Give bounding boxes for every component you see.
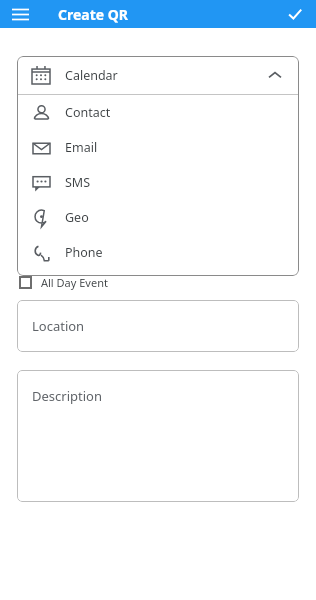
button[interactable]: Contact: [17, 95, 299, 130]
staticText: Description: [32, 387, 102, 405]
staticText: All Day Event: [41, 275, 108, 290]
button[interactable]: Geo: [17, 200, 299, 235]
button[interactable]: Open navigation menu: [4, 0, 36, 28]
button[interactable]: SMS: [17, 165, 299, 200]
button[interactable]: Phone: [17, 235, 299, 270]
button[interactable]: Save QR code: [279, 0, 311, 28]
staticText: Phone: [65, 244, 103, 261]
button[interactable]: Email: [17, 130, 299, 165]
staticText: Geo: [65, 209, 89, 226]
staticText: Contact: [65, 104, 111, 121]
staticText: SMS: [65, 174, 91, 191]
staticText: Calendar: [65, 67, 118, 84]
button[interactable]: Description: [17, 370, 299, 502]
button[interactable]: Location: [17, 300, 299, 352]
button[interactable]: Calendar: [17, 56, 299, 94]
staticText: Create QR: [58, 5, 129, 24]
staticText: Email: [65, 139, 98, 156]
button[interactable]: All Day Event: [19, 272, 316, 292]
staticText: Location: [32, 317, 85, 335]
